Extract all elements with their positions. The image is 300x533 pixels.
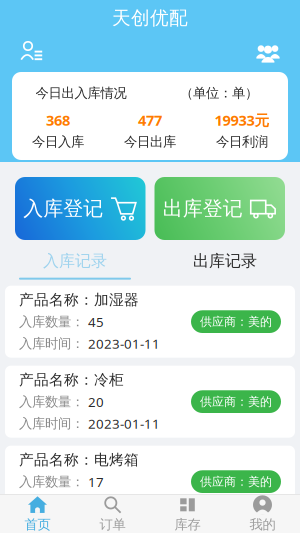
button[interactable]: 订单 <box>75 495 150 533</box>
staticText: 45 <box>88 313 104 331</box>
staticText: 477 <box>138 110 162 130</box>
staticText: 17 <box>88 473 104 491</box>
staticText: 加湿器 <box>94 291 139 309</box>
button[interactable]: 出库记录 <box>150 251 300 280</box>
staticText: 368 <box>46 110 70 130</box>
staticText: 产品名称： <box>19 451 94 469</box>
staticText: 入库时间： <box>19 415 84 432</box>
staticText: 入库时间： <box>19 335 84 352</box>
button[interactable]: 首页 <box>0 495 75 533</box>
staticText: 入库数量： <box>19 394 84 410</box>
staticText: 今日入库 <box>32 134 84 150</box>
staticText: 订单 <box>99 516 125 533</box>
staticText: 产品名称： <box>19 371 94 389</box>
staticText: 入库数量： <box>19 474 84 490</box>
staticText: 产品名称： <box>19 291 94 309</box>
staticText: 2023-01-11 <box>88 415 160 432</box>
staticText: 冷柜 <box>94 371 124 389</box>
staticText: 电烤箱 <box>94 451 139 469</box>
staticText: 今日利润 <box>216 134 268 150</box>
staticText: 入库登记 <box>23 196 103 221</box>
button[interactable]: 入库记录 <box>0 251 150 280</box>
staticText: 出库登记 <box>163 196 243 221</box>
button[interactable]: 出库登记 <box>154 177 285 240</box>
staticText: 库存 <box>174 516 200 533</box>
staticText: 供应商：美的 <box>200 314 272 329</box>
staticText: 入库时间： <box>19 495 84 512</box>
staticText: （单位：单） <box>180 85 258 101</box>
staticText: 我的 <box>249 516 275 533</box>
staticText: 首页 <box>24 516 50 533</box>
staticText: 今日出库 <box>124 134 176 150</box>
staticText: 2023-01-11 <box>88 495 160 512</box>
staticText: 19933元 <box>214 110 269 130</box>
button[interactable]: 我的 <box>225 495 300 533</box>
button[interactable]: 产品名称： <box>5 286 295 358</box>
button[interactable]: 入库登记 <box>15 177 145 240</box>
staticText: 入库数量： <box>19 314 84 330</box>
staticText: 供应商：美的 <box>200 474 272 489</box>
staticText: 出库记录 <box>193 251 257 271</box>
button[interactable]: 团队 <box>248 36 288 68</box>
staticText: 今日出入库情况 <box>35 85 126 101</box>
staticText: 供应商：美的 <box>200 394 272 409</box>
staticText: 天创优配 <box>112 6 188 29</box>
button[interactable]: 产品名称： <box>5 366 295 438</box>
button[interactable]: 库存 <box>150 495 225 533</box>
staticText: 2023-01-11 <box>88 335 160 352</box>
button[interactable]: 产品名称： <box>5 446 295 518</box>
button[interactable]: 联系人 <box>12 36 52 68</box>
staticText: 入库记录 <box>43 251 107 271</box>
staticText: 20 <box>88 393 104 411</box>
